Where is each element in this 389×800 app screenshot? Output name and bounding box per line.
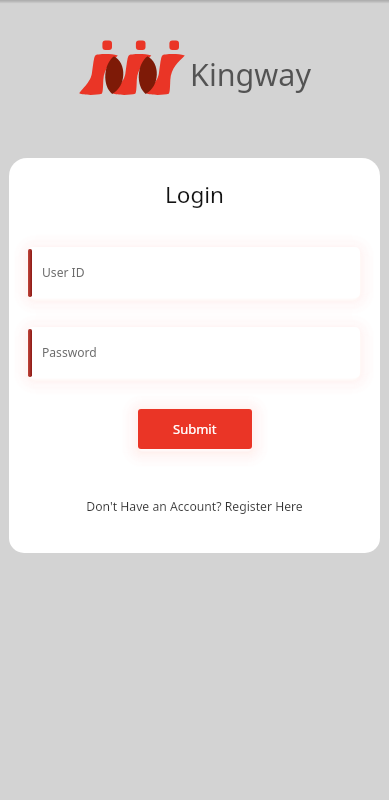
staticText: Password bbox=[42, 344, 97, 360]
staticText: User ID bbox=[42, 264, 85, 280]
button[interactable]: Submit bbox=[138, 409, 252, 449]
button[interactable]: Password bbox=[9, 303, 380, 402]
button[interactable]: User ID bbox=[9, 223, 380, 322]
staticText: Submit bbox=[173, 420, 217, 438]
button[interactable]: Don't Have an Account? Register Here bbox=[9, 498, 380, 515]
staticText: Login bbox=[9, 179, 380, 210]
staticText: Kingway bbox=[190, 53, 311, 95]
